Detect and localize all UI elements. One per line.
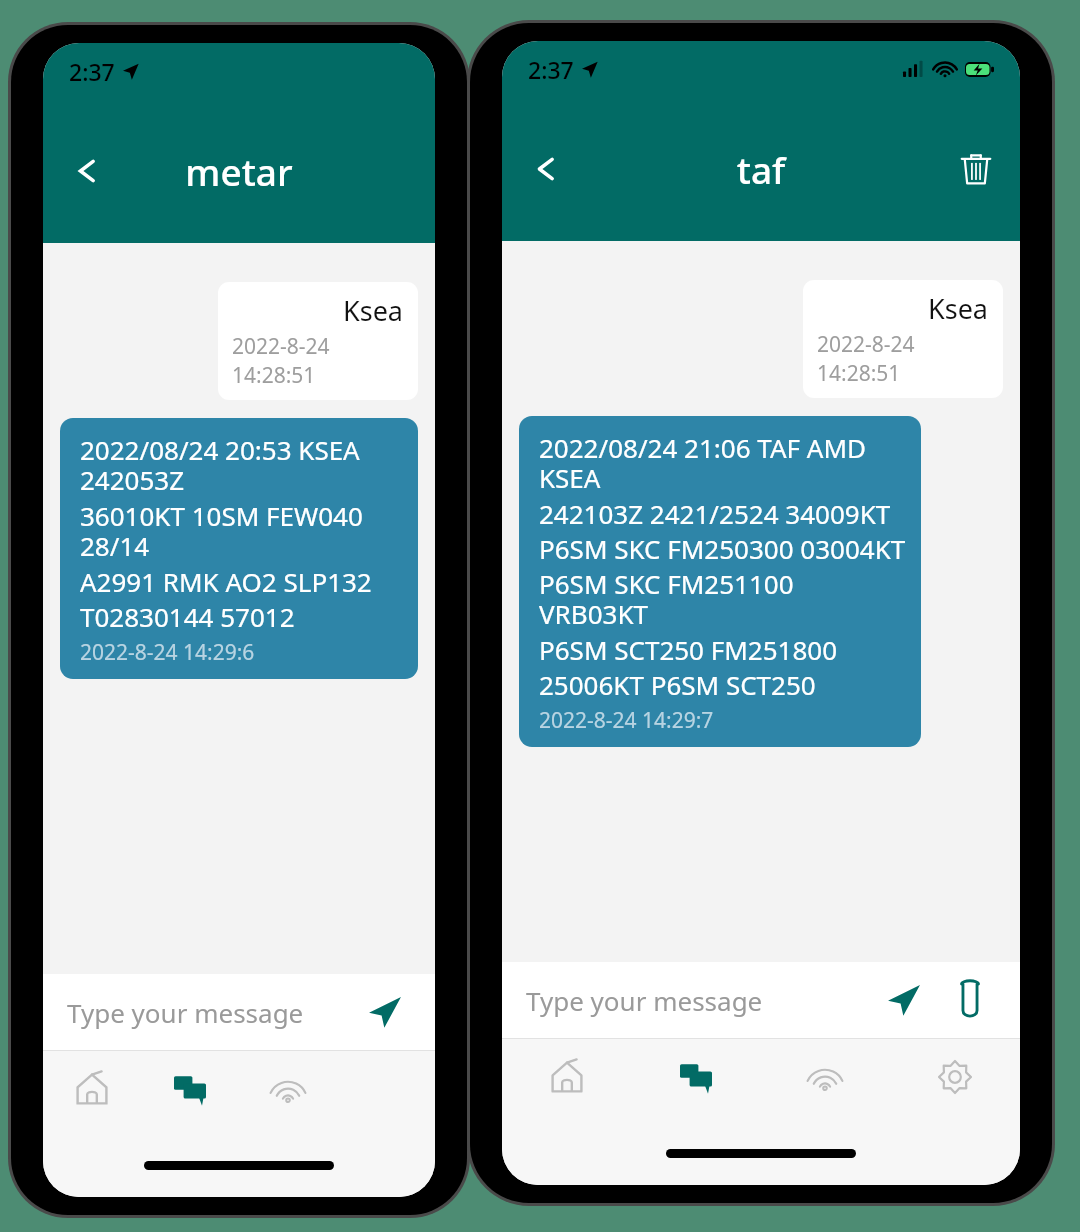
button[interactable]: Back <box>61 145 113 197</box>
staticText: 36010KT 10SM FEW040 28/14 <box>80 498 404 564</box>
staticText: P6SM SKC FM251100 VRB03KT <box>539 566 907 632</box>
staticText: taf <box>572 144 950 194</box>
staticText: A2991 RMK AO2 SLP132 <box>80 564 372 599</box>
staticText: 2022-8-24 14:28:51 <box>232 332 404 390</box>
button[interactable]: Delete <box>950 143 1002 195</box>
staticText: 2022-8-24 14:28:51 <box>817 330 989 388</box>
button[interactable]: Send <box>359 986 411 1038</box>
staticText: 242103Z 2421/2524 34009KT <box>539 496 891 531</box>
button[interactable]: Type your message <box>67 995 359 1030</box>
staticText: P6SM SKC FM250300 03004KT <box>539 531 906 566</box>
button[interactable]: Ksea <box>803 280 1003 398</box>
staticText: 2022/08/24 20:53 KSEA 242053Z <box>80 432 404 498</box>
button[interactable]: Back <box>520 143 572 195</box>
button[interactable]: Send <box>878 974 930 1026</box>
button[interactable]: Network <box>239 1057 337 1143</box>
staticText: Ksea <box>343 292 404 329</box>
staticText: 2022-8-24 14:29:7 <box>539 706 714 735</box>
staticText: T02830144 57012 <box>80 599 295 634</box>
button[interactable]: Ksea <box>218 282 418 400</box>
button[interactable]: Messages <box>631 1045 760 1131</box>
staticText: 2022/08/24 21:06 TAF AMD KSEA <box>539 430 907 496</box>
button[interactable]: Messages <box>141 1057 239 1143</box>
staticText: 2:37 <box>528 54 574 85</box>
button[interactable]: 2022/08/24 21:06 TAF AMD KSEA <box>519 416 921 747</box>
button[interactable]: Attach <box>944 974 996 1026</box>
staticText: metar <box>113 146 365 196</box>
staticText: 2:37 <box>69 56 115 87</box>
button[interactable]: Network <box>760 1045 890 1131</box>
button[interactable]: Home <box>502 1045 631 1131</box>
staticText: 25006KT P6SM SCT250 <box>539 667 816 702</box>
staticText: 2022-8-24 14:29:6 <box>80 638 255 667</box>
button[interactable]: Home <box>43 1057 141 1143</box>
button[interactable]: Type your message <box>526 983 878 1018</box>
staticText: P6SM SCT250 FM251800 <box>539 632 838 667</box>
staticText: Ksea <box>928 290 989 327</box>
button[interactable]: Settings <box>890 1045 1020 1131</box>
button[interactable]: 2022/08/24 20:53 KSEA 242053Z <box>60 418 418 679</box>
